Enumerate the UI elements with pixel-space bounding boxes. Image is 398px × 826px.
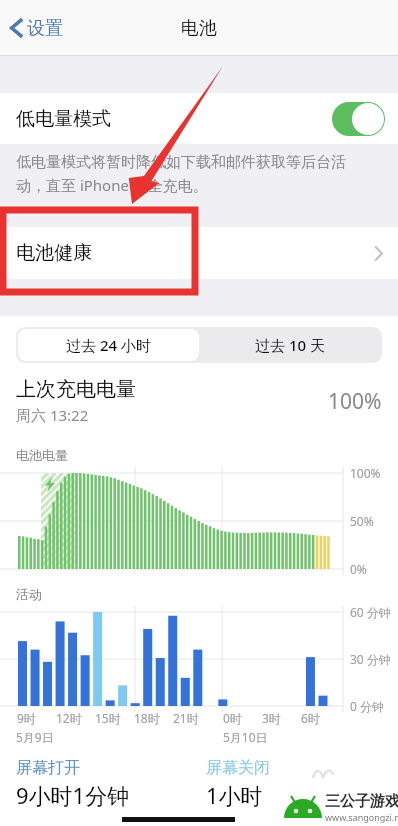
staticText: 9小时1分钟 (16, 780, 130, 810)
staticText: 1小时 (206, 780, 263, 810)
staticText: 0% (350, 561, 367, 577)
staticText: 100% (350, 465, 381, 481)
staticText: 3时 (262, 710, 281, 726)
staticText: 12时 (56, 710, 82, 726)
staticText: 三公子游戏网 (325, 792, 398, 811)
staticText: 5月10日 (223, 729, 268, 745)
staticText: 18时 (134, 710, 160, 726)
staticText: 60 分钟 (350, 604, 391, 620)
button[interactable]: 低电量模式开关 (332, 102, 385, 136)
staticText: 设置 (27, 17, 63, 40)
staticText: 50% (350, 513, 374, 529)
staticText: 电池 (181, 17, 217, 40)
staticText: 周六 13:22 (16, 405, 89, 425)
button[interactable]: 过去 10 天 (199, 329, 380, 361)
staticText: 9时 (17, 710, 36, 726)
staticText: 30 分钟 (350, 651, 391, 667)
staticText: www.sangongzi.net (325, 811, 398, 823)
staticText: 上次充电电量 (16, 377, 136, 402)
staticText: 活动 (16, 586, 42, 602)
staticText: 低电量模式 (16, 107, 111, 131)
staticText: 0时 (223, 710, 242, 726)
staticText: 0 分钟 (350, 698, 384, 714)
staticText: 电池电量 (16, 447, 68, 463)
staticText: 电池健康 (16, 241, 92, 265)
staticText: 6时 (301, 710, 320, 726)
button[interactable]: 低电量模式 (0, 93, 398, 144)
staticText: 低电量模式将暂时降低如下载和邮件获取等后台活 动，直至 iPhone 完全充电。 (16, 153, 346, 196)
staticText: 5月9日 (16, 729, 54, 745)
staticText: 15时 (95, 710, 121, 726)
staticText: 21时 (173, 710, 199, 726)
staticText: 100% (328, 387, 382, 416)
button[interactable]: 设置 (9, 16, 63, 40)
staticText: 过去 10 天 (255, 335, 325, 355)
button[interactable]: 过去 24 小时 (18, 329, 199, 361)
staticText: 屏幕关闭 (206, 758, 270, 778)
staticText: 屏幕打开 (16, 758, 80, 778)
staticText: 过去 24 小时 (66, 335, 151, 355)
button[interactable]: 电池健康 (0, 227, 398, 279)
